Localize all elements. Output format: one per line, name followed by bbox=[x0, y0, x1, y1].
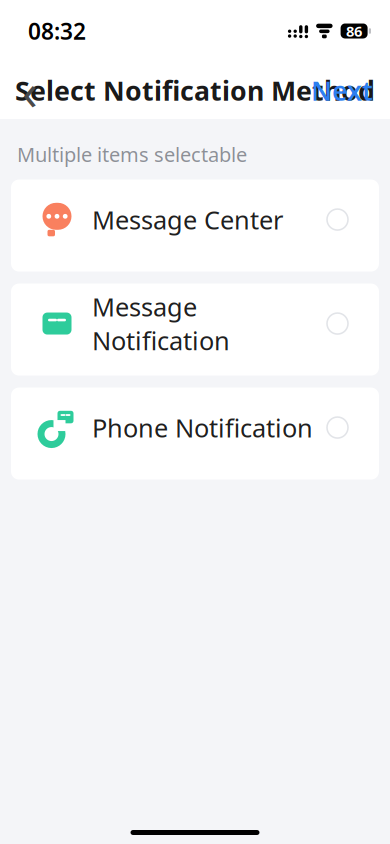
button[interactable]: Message Notification bbox=[11, 284, 379, 376]
staticText: Multiple items selectable bbox=[17, 141, 247, 168]
staticText: 08:32 bbox=[28, 16, 86, 46]
staticText: Message Notification bbox=[92, 290, 230, 357]
button[interactable]: Back bbox=[5, 62, 55, 118]
staticText: Message Center bbox=[92, 203, 283, 236]
staticText: Phone Notification bbox=[92, 411, 313, 444]
staticText: Next bbox=[311, 73, 373, 108]
button[interactable]: Phone Notification bbox=[11, 388, 379, 480]
staticText: ‹ bbox=[22, 57, 38, 124]
button[interactable]: Next bbox=[299, 62, 385, 118]
button[interactable]: Message Center bbox=[11, 180, 379, 272]
staticText: Select Notification Method bbox=[15, 73, 375, 108]
staticText: 86 bbox=[346, 21, 362, 41]
